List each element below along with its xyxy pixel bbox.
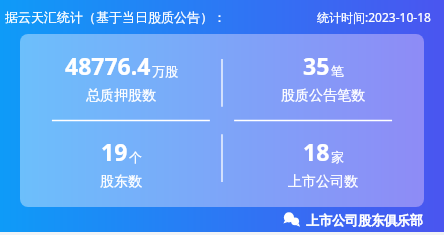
staticText: 18 <box>303 136 330 167</box>
staticText: 35 <box>303 50 330 81</box>
staticText: 万股 <box>152 63 178 79</box>
button[interactable]: 48776.4 <box>20 34 222 120</box>
staticText: 股质公告笔数 <box>281 87 365 105</box>
button[interactable]: 18 <box>222 120 424 207</box>
staticText: 个 <box>129 149 142 165</box>
staticText: 上市公司股东俱乐部 <box>306 212 423 228</box>
staticText: 笔 <box>331 63 344 79</box>
staticText: 19 <box>101 136 128 167</box>
staticText: 据云天汇统计（基于当日股质公告）： <box>5 9 226 25</box>
staticText: 上市公司数 <box>288 173 358 191</box>
staticText: 股东数 <box>100 173 142 191</box>
staticText: 统计时间:2023-10-18 <box>317 9 431 25</box>
button[interactable]: 上市公司股东俱乐部 WeChat official account <box>283 211 423 228</box>
staticText: 总质押股数 <box>86 87 156 105</box>
staticText: 48776.4 <box>65 50 151 81</box>
staticText: 家 <box>331 149 344 165</box>
button[interactable]: 19 <box>20 120 222 207</box>
button[interactable]: 35 <box>222 34 424 120</box>
